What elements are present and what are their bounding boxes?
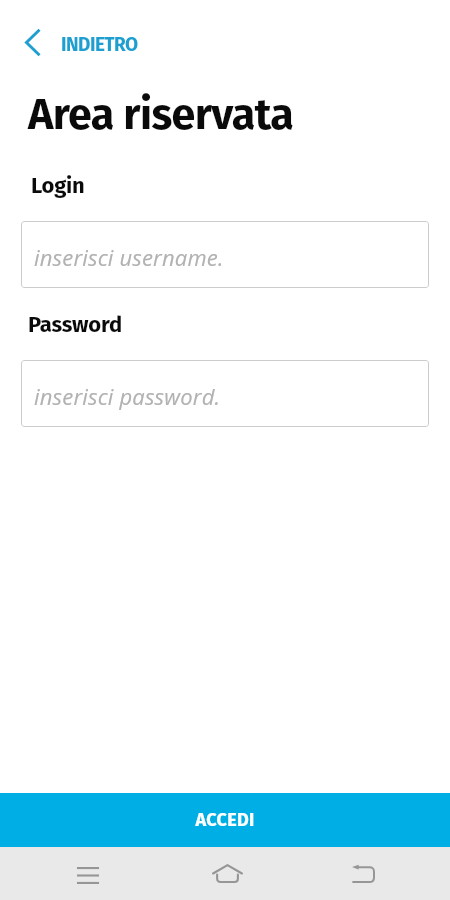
button[interactable]: Back [333, 849, 393, 897]
staticText: INDIETRO [61, 33, 138, 56]
button[interactable]: inserisci password. [21, 360, 429, 427]
staticText: Password [28, 311, 122, 337]
button[interactable]: Recent apps [58, 851, 118, 899]
staticText: Area riservata [28, 89, 294, 141]
staticText: inserisci password. [34, 381, 221, 411]
button[interactable]: inserisci username. [21, 221, 429, 288]
staticText: Login [31, 172, 85, 198]
staticText: ACCEDI [195, 809, 255, 831]
button[interactable]: Home [197, 849, 257, 897]
staticText: inserisci username. [34, 242, 224, 272]
button[interactable]: ACCEDI [0, 793, 450, 847]
button[interactable]: INDIETRO [15, 22, 154, 63]
